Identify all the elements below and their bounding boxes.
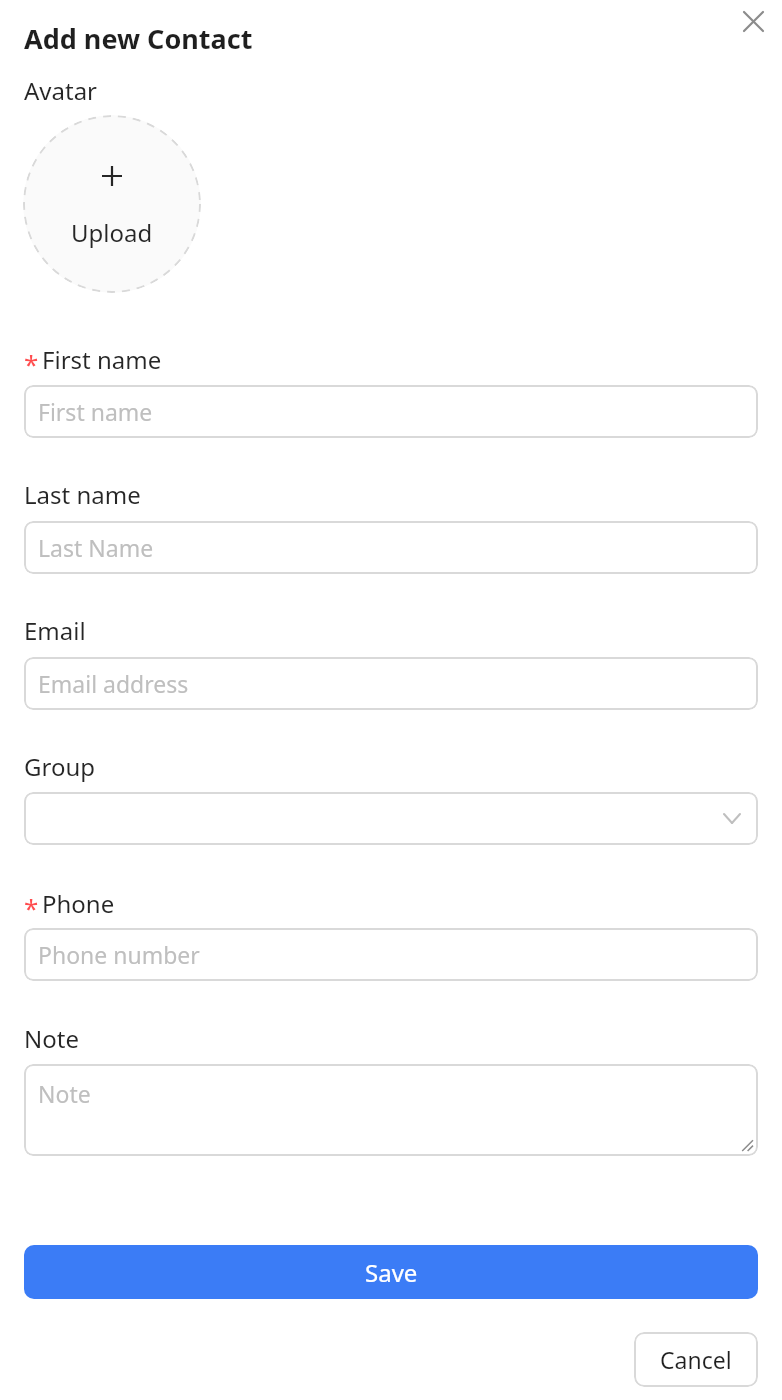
button[interactable]: Last Name xyxy=(24,521,758,574)
staticText: Note xyxy=(38,1078,91,1109)
staticText: Email xyxy=(24,614,86,647)
staticText: Group xyxy=(24,750,96,783)
button[interactable]: Save xyxy=(24,1245,758,1299)
button[interactable]: Cancel xyxy=(634,1332,758,1387)
button[interactable]: Email address xyxy=(24,657,758,710)
staticText: Upload xyxy=(71,216,153,249)
staticText: Phone number xyxy=(38,939,200,970)
staticText: Last name xyxy=(24,478,141,511)
button[interactable]: Note xyxy=(24,1064,758,1156)
staticText: * xyxy=(24,346,39,381)
button[interactable]: First name xyxy=(24,385,758,438)
staticText: Save xyxy=(365,1256,418,1289)
staticText: Last Name xyxy=(38,532,154,563)
staticText: First name xyxy=(38,396,153,427)
button[interactable]: Upload xyxy=(23,115,201,293)
staticText: * xyxy=(24,890,39,925)
staticText: Add new Contact xyxy=(24,20,253,57)
staticText: Phone xyxy=(42,887,115,920)
staticText: Avatar xyxy=(24,74,98,107)
button[interactable] xyxy=(739,7,767,35)
staticText: Cancel xyxy=(660,1344,732,1375)
staticText: Note xyxy=(24,1022,79,1055)
button[interactable]: Phone number xyxy=(24,928,758,981)
button[interactable] xyxy=(24,792,758,845)
staticText: First name xyxy=(42,343,162,376)
staticText: Email address xyxy=(38,668,189,699)
